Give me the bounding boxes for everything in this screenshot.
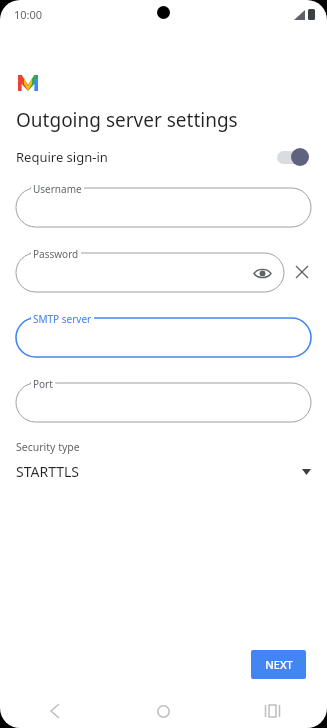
staticText: Username (33, 182, 82, 196)
staticText: Security type (16, 440, 80, 454)
button[interactable]: NEXT (251, 650, 306, 679)
button[interactable]: Security type (0, 440, 327, 481)
staticText: Outgoing server settings (16, 107, 238, 133)
button[interactable]: Require sign-in (0, 142, 327, 172)
staticText: STARTTLS (16, 462, 80, 481)
staticText: SMTP server (33, 312, 92, 326)
button[interactable]: Require sign-in toggle (275, 147, 311, 167)
staticText: NEXT (265, 657, 293, 672)
staticText: 10:00 (14, 7, 43, 22)
button[interactable]: Port (16, 383, 311, 422)
button[interactable]: SMTP server (16, 318, 311, 357)
button[interactable]: Username (16, 188, 311, 227)
staticText: Require sign-in (16, 148, 108, 166)
button[interactable]: Recent apps (218, 694, 327, 728)
button[interactable]: Show password (250, 261, 274, 285)
button[interactable]: Password (16, 253, 284, 292)
staticText: Port (33, 377, 53, 391)
staticText: Password (33, 247, 79, 261)
button[interactable]: Home (109, 694, 218, 728)
button[interactable]: Back (0, 694, 109, 728)
button[interactable]: Clear password (288, 258, 316, 286)
